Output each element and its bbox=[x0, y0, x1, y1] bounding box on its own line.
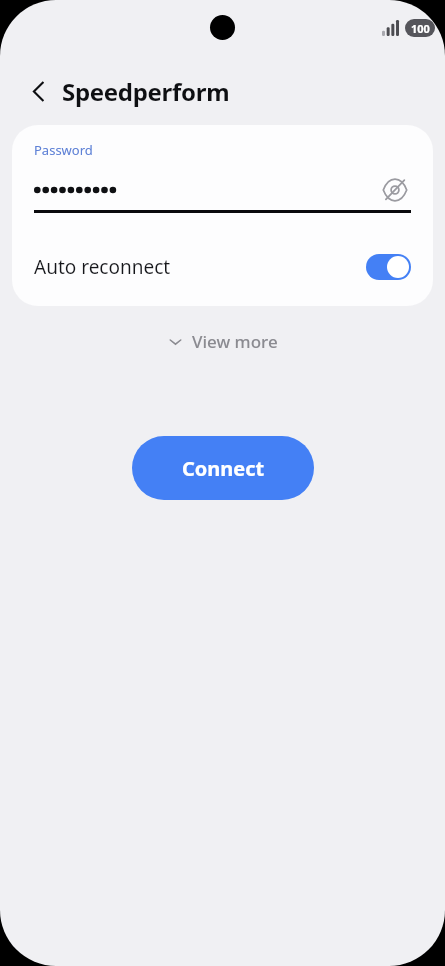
staticText: 100 bbox=[411, 21, 430, 36]
button[interactable]: Auto reconnect bbox=[12, 245, 433, 289]
staticText: View more bbox=[192, 330, 278, 353]
staticText: Auto reconnect bbox=[34, 254, 171, 280]
button[interactable]: View more bbox=[154, 323, 292, 360]
button[interactable]: Connect bbox=[132, 436, 314, 500]
staticText: Connect bbox=[182, 455, 265, 482]
staticText: Speedperform bbox=[62, 75, 230, 108]
button[interactable]: Back bbox=[18, 71, 58, 111]
staticText: Password bbox=[34, 141, 93, 159]
button[interactable]: Show password bbox=[379, 174, 411, 206]
